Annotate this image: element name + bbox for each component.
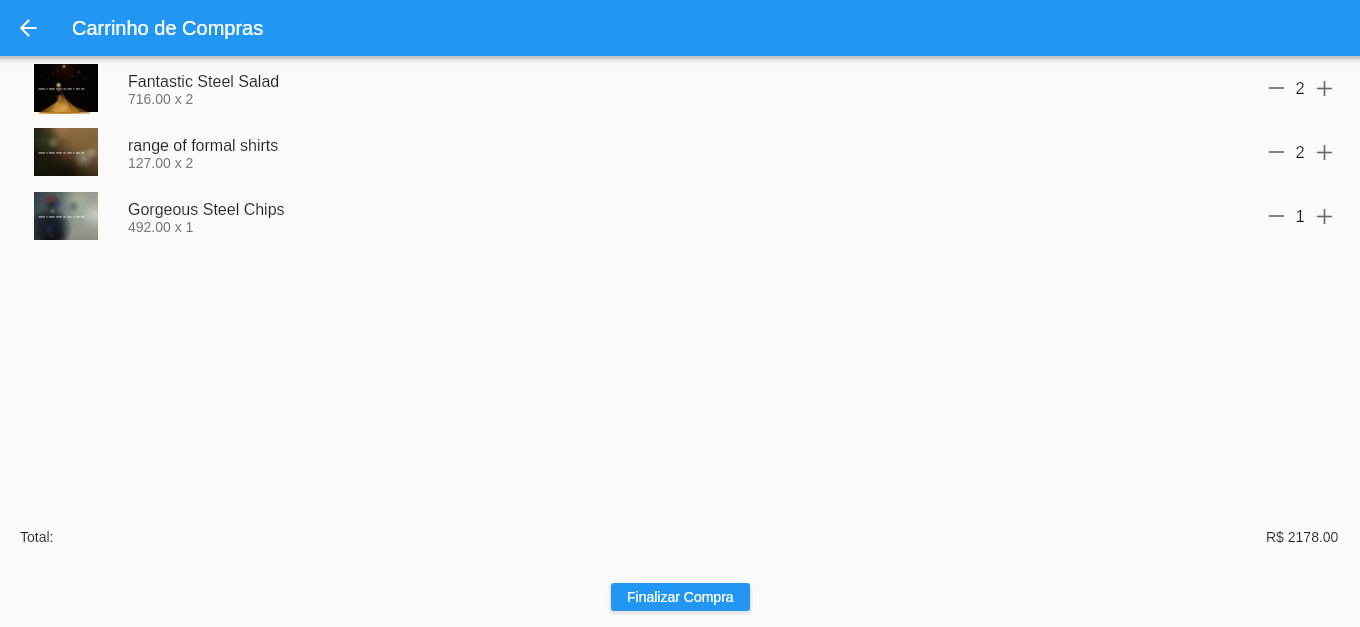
button[interactable]: Gorgeous Steel Chips: [0, 184, 1360, 248]
button[interactable]: Decrease quantity: [1259, 192, 1293, 240]
button[interactable]: Increase quantity: [1307, 64, 1341, 112]
button[interactable]: Fantastic Steel Salad: [0, 56, 1360, 120]
staticText: Carrinho de Compras: [72, 17, 264, 39]
button[interactable]: Increase quantity: [1307, 192, 1341, 240]
staticText: Finalizar Compra: [627, 589, 734, 605]
staticText: R$ 2178.00: [1266, 529, 1339, 545]
staticText: Gorgeous Steel Chips: [128, 201, 285, 219]
button[interactable]: Decrease quantity: [1259, 128, 1293, 176]
button[interactable]: Decrease quantity: [1259, 64, 1293, 112]
button[interactable]: Finalizar Compra: [611, 583, 750, 611]
button[interactable]: range of formal shirts: [0, 120, 1360, 184]
button[interactable]: Increase quantity: [1307, 128, 1341, 176]
staticText: Total:: [20, 529, 54, 545]
staticText: 716.00 x 2: [128, 91, 194, 107]
staticText: range of formal shirts: [128, 137, 279, 155]
button[interactable]: Back: [0, 0, 56, 56]
staticText: 1: [1295, 207, 1305, 225]
staticText: 2: [1295, 79, 1305, 97]
staticText: 127.00 x 2: [128, 155, 194, 171]
staticText: 2: [1295, 143, 1305, 161]
staticText: Fantastic Steel Salad: [128, 73, 280, 91]
staticText: 492.00 x 1: [128, 219, 194, 235]
